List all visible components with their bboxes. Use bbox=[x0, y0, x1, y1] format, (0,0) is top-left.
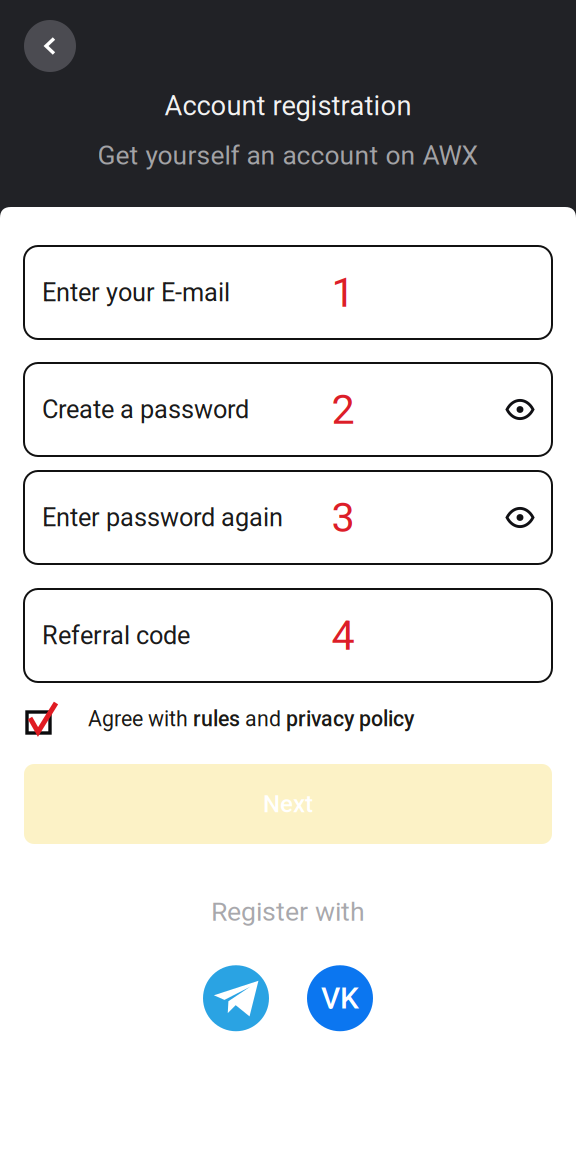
staticText: Register with bbox=[211, 896, 365, 927]
staticText: 1 bbox=[331, 268, 354, 317]
button[interactable]: Back bbox=[24, 20, 76, 72]
staticText: Agree with rules and privacy policy bbox=[88, 707, 414, 731]
staticText: 4 bbox=[331, 611, 354, 660]
button[interactable]: Register with Telegram bbox=[203, 965, 269, 1031]
button[interactable]: Register with VK bbox=[307, 965, 373, 1031]
staticText: Enter password again bbox=[42, 503, 283, 532]
staticText: Create a password bbox=[42, 395, 249, 424]
staticText: 3 bbox=[331, 493, 354, 542]
staticText: Referral code bbox=[42, 621, 190, 650]
button[interactable]: Agree with rules and privacy policy bbox=[24, 701, 64, 737]
staticText: VK bbox=[321, 981, 359, 1016]
staticText: Enter your E-mail bbox=[42, 278, 230, 307]
button[interactable]: Next bbox=[24, 764, 552, 844]
staticText: 2 bbox=[331, 385, 354, 434]
staticText: Next bbox=[263, 790, 313, 818]
staticText: Account registration bbox=[164, 90, 411, 122]
staticText: Get yourself an account on AWX bbox=[97, 140, 478, 171]
